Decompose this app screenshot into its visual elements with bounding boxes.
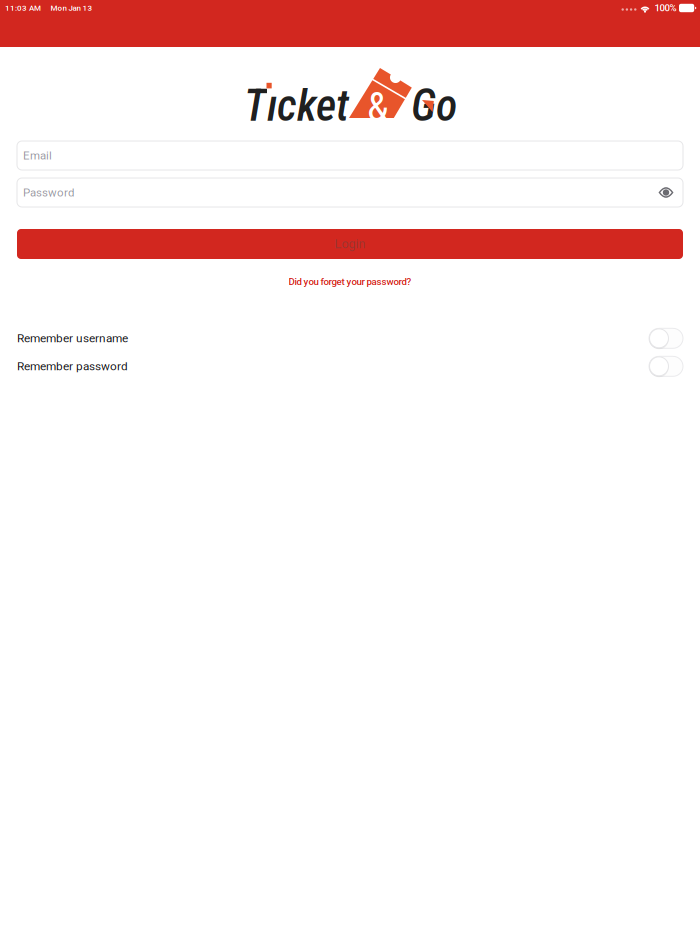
button[interactable]: Login bbox=[17, 229, 683, 259]
staticText: Did you forget your password? bbox=[288, 276, 411, 287]
staticText: & bbox=[367, 84, 389, 131]
button[interactable]: Remember username bbox=[0, 326, 700, 350]
button[interactable]: Show password bbox=[655, 181, 677, 203]
staticText: 100% bbox=[654, 2, 676, 14]
button[interactable]: Remember password bbox=[0, 354, 700, 378]
staticText: Login bbox=[334, 237, 365, 251]
staticText: Remember username bbox=[17, 331, 128, 345]
staticText: 11:03 AM bbox=[5, 3, 41, 13]
staticText: Ticket bbox=[244, 80, 349, 132]
staticText: Mon Jan 13 bbox=[50, 3, 92, 13]
staticText: Remember password bbox=[17, 359, 128, 373]
staticText: Go bbox=[411, 80, 457, 132]
staticText: Password bbox=[23, 186, 74, 199]
button[interactable]: Did you forget your password? bbox=[288, 276, 411, 287]
staticText: Email bbox=[23, 149, 52, 162]
